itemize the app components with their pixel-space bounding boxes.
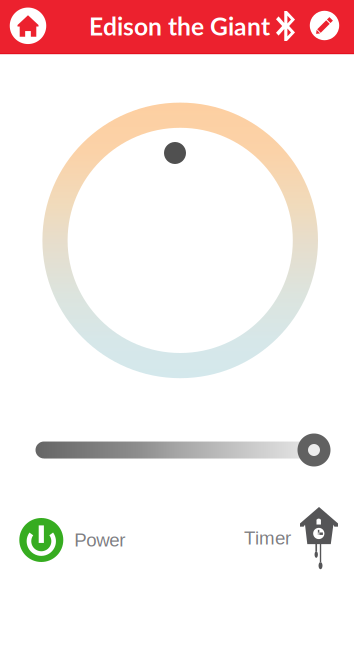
button[interactable]: Power (19, 518, 125, 562)
button[interactable]: Edit (304, 3, 344, 47)
button[interactable]: Brightness (297, 433, 330, 466)
button[interactable]: Colour selection (164, 142, 186, 164)
staticText: Power (74, 530, 125, 550)
button[interactable]: Bluetooth (269, 4, 301, 48)
button[interactable]: Timer (244, 507, 338, 569)
button[interactable]: Home (6, 4, 50, 48)
staticText: Edison the Giant (89, 11, 270, 41)
staticText: Timer (244, 528, 291, 548)
